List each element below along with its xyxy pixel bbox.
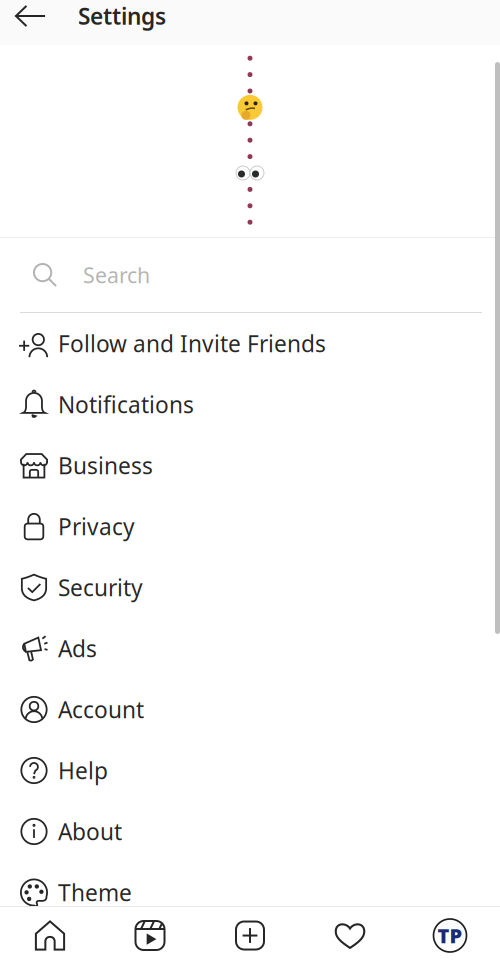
staticText: Help <box>58 755 108 785</box>
button[interactable]: Activity <box>300 907 400 964</box>
staticText: Notifications <box>58 389 194 419</box>
staticText: TP <box>437 922 462 949</box>
button[interactable]: Security <box>0 557 500 618</box>
button[interactable]: Reels <box>100 907 200 964</box>
button[interactable]: Follow and Invite Friends <box>0 313 500 374</box>
button[interactable]: Theme <box>0 862 500 923</box>
staticText: Search <box>83 261 150 289</box>
button[interactable]: Help <box>0 740 500 801</box>
button[interactable]: Profile <box>400 907 500 964</box>
button[interactable]: About <box>0 801 500 862</box>
button[interactable]: Account <box>0 679 500 740</box>
staticText: Ads <box>58 633 97 663</box>
button[interactable]: Notifications <box>0 374 500 435</box>
button[interactable]: Back <box>0 0 78 45</box>
staticText: Business <box>58 450 153 480</box>
staticText: Security <box>58 572 143 602</box>
button[interactable]: Create <box>200 907 300 964</box>
button[interactable]: Ads <box>0 618 500 679</box>
button[interactable]: Home <box>0 907 100 964</box>
staticText: Settings <box>78 1 166 31</box>
staticText: About <box>58 816 122 846</box>
button[interactable]: Business <box>0 435 500 496</box>
staticText: Account <box>58 694 144 724</box>
staticText: Theme <box>58 877 132 907</box>
staticText: Privacy <box>58 511 135 541</box>
staticText: Follow and Invite Friends <box>58 328 326 358</box>
button[interactable]: Privacy <box>0 496 500 557</box>
